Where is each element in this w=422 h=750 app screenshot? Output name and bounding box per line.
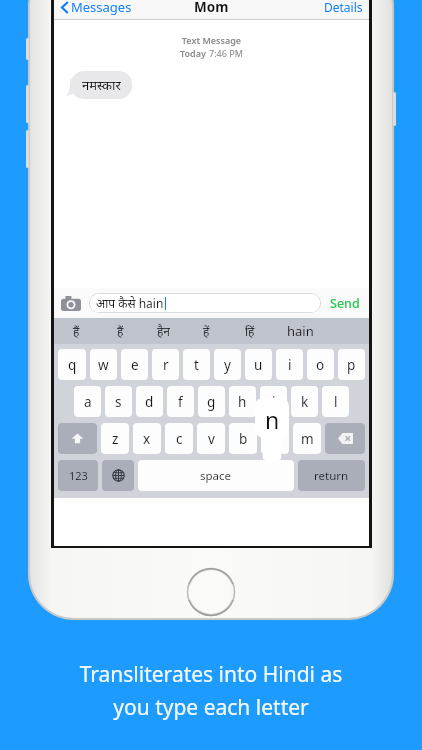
staticText: Details — [324, 0, 363, 15]
button[interactable]: g — [198, 386, 225, 417]
button[interactable]: हैं — [98, 318, 142, 344]
button[interactable]: b — [229, 423, 257, 454]
staticText: g — [207, 393, 216, 411]
staticText: q — [68, 356, 77, 374]
staticText: आप कैसे hain — [96, 295, 164, 311]
button[interactable]: m — [293, 423, 321, 454]
button[interactable]: k — [291, 386, 318, 417]
staticText: f — [178, 393, 183, 411]
staticText: e — [131, 356, 139, 374]
staticText: x — [143, 430, 151, 448]
button[interactable]: Backspace — [325, 423, 365, 454]
staticText: j — [272, 393, 276, 411]
button[interactable]: v — [197, 423, 225, 454]
button[interactable]: नमस्कार — [71, 71, 132, 99]
staticText: m — [301, 430, 314, 448]
button[interactable]: f — [167, 386, 194, 417]
button[interactable]: return — [298, 460, 365, 491]
staticText: y — [224, 356, 231, 374]
button[interactable]: n — [261, 423, 289, 454]
staticText: w — [98, 356, 109, 374]
staticText: Transliterates into Hindi as — [0, 660, 422, 689]
button[interactable]: z — [101, 423, 129, 454]
staticText: Mom — [194, 0, 229, 16]
staticText: h — [238, 393, 247, 411]
staticText: p — [347, 356, 356, 374]
button[interactable]: x — [133, 423, 161, 454]
button[interactable]: 123 — [58, 460, 98, 491]
button[interactable]: हैं — [54, 318, 98, 344]
staticText: u — [254, 356, 263, 374]
button[interactable]: Camera — [60, 292, 82, 314]
staticText: Messages — [71, 0, 132, 16]
button[interactable]: w — [90, 349, 117, 380]
button[interactable]: Home — [186, 567, 236, 617]
button[interactable]: आप कैसे hain — [89, 293, 321, 313]
staticText: return — [314, 468, 349, 484]
staticText: r — [163, 356, 169, 374]
button[interactable]: Switch keyboard — [102, 460, 134, 491]
button[interactable]: c — [165, 423, 193, 454]
button[interactable]: Details — [318, 0, 369, 18]
staticText: t — [194, 356, 199, 374]
button[interactable]: e — [121, 349, 148, 380]
staticText: Today — [180, 47, 209, 59]
button[interactable]: y — [214, 349, 241, 380]
staticText: k — [301, 393, 309, 411]
staticText: 7:46 PM — [209, 47, 243, 59]
staticText: z — [112, 430, 119, 448]
staticText: s — [115, 393, 122, 411]
staticText: हिं — [245, 323, 255, 339]
button[interactable]: l — [322, 386, 349, 417]
staticText: n — [265, 404, 280, 435]
button[interactable]: p — [338, 349, 365, 380]
staticText: हें — [203, 323, 210, 339]
button[interactable]: r — [152, 349, 179, 380]
staticText: o — [316, 356, 325, 374]
button[interactable]: hain — [271, 318, 330, 344]
button[interactable]: i — [276, 349, 303, 380]
button[interactable]: j — [260, 386, 287, 417]
button[interactable]: s — [105, 386, 132, 417]
staticText: v — [208, 430, 215, 448]
staticText: i — [288, 356, 292, 374]
button[interactable]: Messages — [58, 0, 135, 18]
staticText: हैन — [157, 323, 171, 339]
staticText: a — [84, 393, 92, 411]
staticText: space — [200, 468, 232, 484]
button[interactable]: u — [245, 349, 272, 380]
button[interactable]: हिं — [228, 318, 271, 344]
button[interactable]: space — [138, 460, 294, 491]
staticText: नमस्कार — [82, 76, 121, 94]
button[interactable]: Send — [327, 292, 363, 315]
staticText: b — [239, 430, 248, 448]
button[interactable]: t — [183, 349, 210, 380]
staticText: c — [176, 430, 183, 448]
staticText: हैं — [117, 323, 124, 339]
staticText: d — [145, 393, 154, 411]
button[interactable]: हैन — [142, 318, 185, 344]
button[interactable]: h — [229, 386, 256, 417]
staticText: Text Message — [54, 34, 369, 46]
button[interactable]: Shift — [58, 423, 97, 454]
staticText: l — [334, 393, 338, 411]
button[interactable]: q — [58, 349, 86, 380]
button[interactable]: हें — [185, 318, 228, 344]
staticText: you type each letter — [0, 693, 422, 722]
button[interactable]: d — [136, 386, 163, 417]
button[interactable]: a — [74, 386, 101, 417]
staticText: हैं — [73, 323, 80, 339]
staticText: hain — [287, 322, 314, 340]
button[interactable]: o — [307, 349, 334, 380]
staticText: 123 — [69, 468, 88, 483]
staticText: Send — [330, 295, 360, 312]
